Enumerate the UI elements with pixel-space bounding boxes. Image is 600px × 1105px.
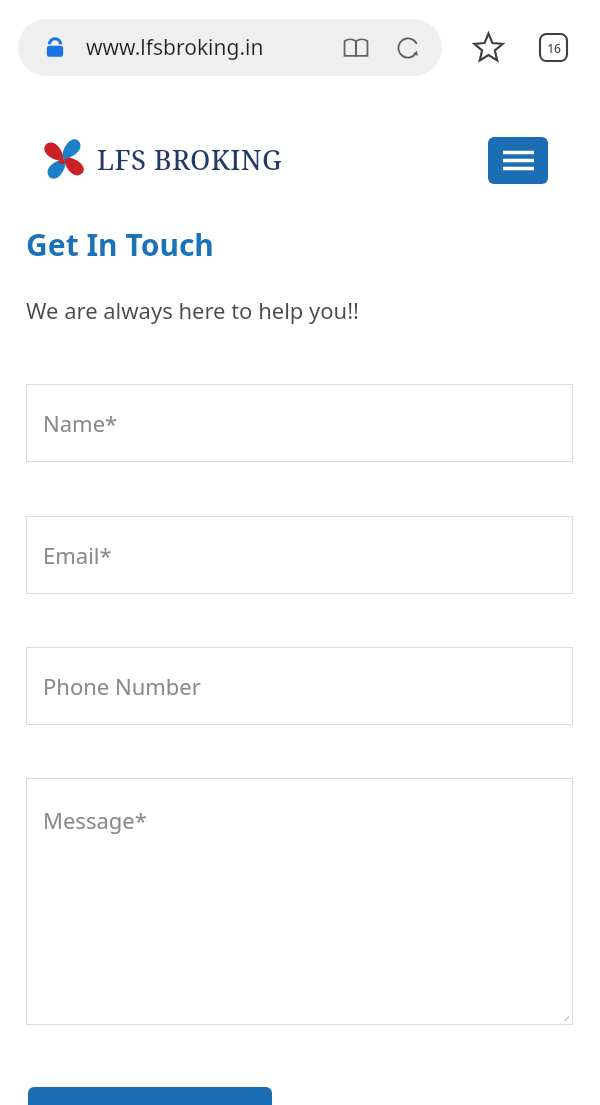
staticText: We are always here to help you!! (26, 295, 360, 325)
staticText: www.lfsbroking.in (86, 33, 264, 62)
staticText: Get In Touch (26, 224, 214, 265)
staticText: Email* (43, 540, 112, 570)
button[interactable]: LFS BROKING (42, 137, 283, 181)
staticText: 16 (547, 40, 561, 56)
button[interactable]: Email* (26, 516, 573, 594)
staticText: Phone Number (43, 671, 201, 701)
button[interactable]: Message* (26, 778, 573, 1025)
staticText: LFS BROKING (97, 141, 283, 178)
button[interactable]: Bookmark (464, 23, 512, 71)
button[interactable]: Phone Number (26, 647, 573, 725)
button[interactable]: Tabs, 16 open (529, 23, 577, 71)
button[interactable]: www.lfsbroking.in (18, 19, 442, 76)
button[interactable]: Reader mode (334, 26, 378, 70)
button[interactable]: Submit (28, 1087, 272, 1105)
staticText: Name* (43, 408, 118, 438)
button[interactable]: Open menu (488, 137, 548, 184)
button[interactable]: Reload page (386, 26, 430, 70)
staticText: Message* (43, 805, 147, 835)
button[interactable]: Name* (26, 384, 573, 462)
